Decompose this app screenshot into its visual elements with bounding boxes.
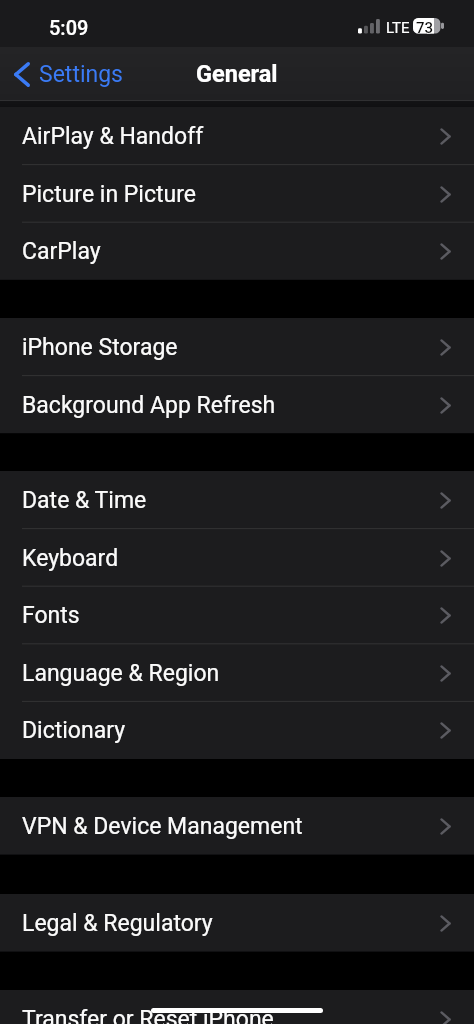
staticText: VPN & Device Management <box>22 813 303 840</box>
staticText: Dictionary <box>22 717 126 744</box>
staticText: General <box>196 60 278 88</box>
button[interactable]: Legal & Regulatory <box>0 894 474 952</box>
button[interactable]: iPhone Storage <box>0 318 474 376</box>
staticText: Legal & Regulatory <box>22 910 213 937</box>
staticText: Picture in Picture <box>22 181 196 208</box>
button[interactable]: Dictionary <box>0 701 474 759</box>
staticText: Background App Refresh <box>22 392 276 419</box>
other: Cellular signal <box>358 19 381 34</box>
button[interactable]: Keyboard <box>0 529 474 587</box>
button[interactable]: Settings <box>0 55 133 94</box>
staticText: Date & Time <box>22 487 147 514</box>
button[interactable]: Fonts <box>0 586 474 644</box>
staticText: iPhone Storage <box>22 334 178 361</box>
staticText: Keyboard <box>22 545 119 572</box>
other: Battery 73 percent <box>413 18 444 34</box>
button[interactable]: Picture in Picture <box>0 165 474 223</box>
staticText: Fonts <box>22 602 80 629</box>
button[interactable]: CarPlay <box>0 222 474 280</box>
staticText: Language & Region <box>22 660 220 687</box>
staticText: Transfer or Reset iPhone <box>22 1006 274 1024</box>
staticText: CarPlay <box>22 238 101 265</box>
button[interactable]: AirPlay & Handoff <box>0 107 474 165</box>
staticText: Settings <box>39 61 123 88</box>
button[interactable]: Transfer or Reset iPhone <box>0 990 474 1024</box>
button[interactable]: Background App Refresh <box>0 376 474 434</box>
button[interactable]: Date & Time <box>0 471 474 529</box>
button[interactable]: Language & Region <box>0 644 474 702</box>
staticText: AirPlay & Handoff <box>22 123 204 150</box>
button[interactable]: VPN & Device Management <box>0 797 474 855</box>
staticText: 5:09 <box>49 16 89 39</box>
staticText: 73 <box>414 19 435 35</box>
staticText: LTE <box>386 19 410 37</box>
